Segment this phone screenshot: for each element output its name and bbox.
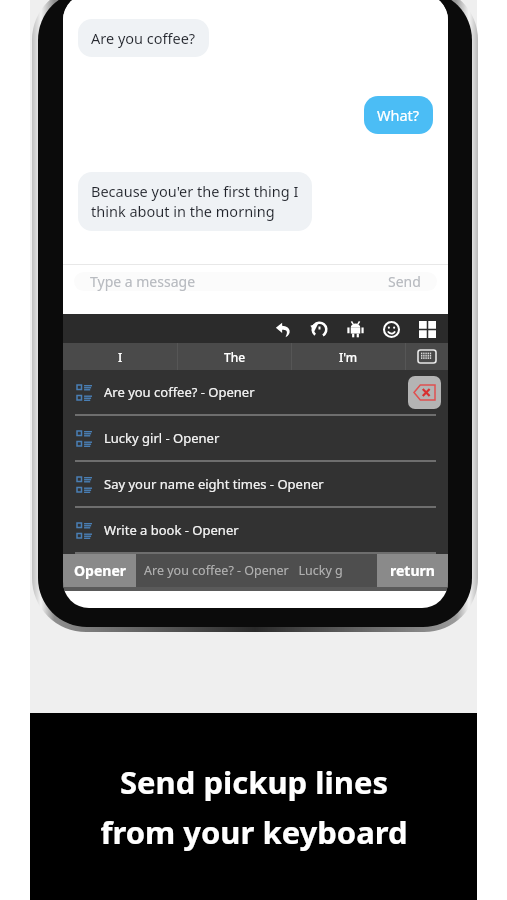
- staticText: Send pickup lines: [120, 761, 388, 803]
- button[interactable]: Because you'er the first thing I think a…: [78, 172, 312, 231]
- staticText: Say your name eight times - Opener: [104, 475, 324, 493]
- staticText: Type a message: [90, 272, 196, 291]
- button[interactable]: return: [377, 554, 448, 587]
- button[interactable]: Undo: [272, 318, 294, 340]
- staticText: I'm: [339, 349, 358, 365]
- button[interactable]: Type a message: [74, 272, 437, 291]
- staticText: Are you coffee?: [91, 28, 196, 48]
- button[interactable]: I: [63, 343, 177, 370]
- staticText: What?: [377, 105, 420, 125]
- staticText: I: [118, 349, 123, 365]
- button[interactable]: Lucky girl - Opener: [63, 416, 448, 460]
- button[interactable]: Keyboard: [406, 343, 448, 370]
- button[interactable]: Android: [344, 318, 366, 340]
- button[interactable]: Emoji: [380, 318, 402, 340]
- staticText: The: [224, 349, 246, 365]
- staticText: Send: [388, 272, 421, 291]
- staticText: Are you coffee? - Opener: [104, 383, 255, 401]
- staticText: Because you'er the first thing I think a…: [91, 181, 299, 222]
- staticText: Are you coffee? - Opener Lucky g: [144, 562, 343, 579]
- staticText: return: [390, 561, 435, 580]
- staticText: Write a book - Opener: [104, 521, 239, 539]
- button[interactable]: Write a book - Opener: [63, 508, 448, 552]
- button[interactable]: I'm: [292, 343, 405, 370]
- button[interactable]: The: [178, 343, 291, 370]
- button[interactable]: Opener: [63, 554, 136, 587]
- button[interactable]: Are you coffee? - Opener Lucky g: [136, 554, 377, 587]
- button[interactable]: Are you coffee? - Opener: [63, 370, 448, 414]
- button[interactable]: Delete: [408, 376, 441, 409]
- staticText: from your keyboard: [100, 811, 408, 853]
- button[interactable]: Apps: [416, 318, 438, 340]
- button[interactable]: History: [308, 318, 330, 340]
- staticText: Opener: [74, 561, 126, 580]
- button[interactable]: Are you coffee?: [78, 19, 209, 57]
- button[interactable]: Say your name eight times - Opener: [63, 462, 448, 506]
- staticText: Lucky girl - Opener: [104, 429, 220, 447]
- button[interactable]: What?: [364, 96, 433, 134]
